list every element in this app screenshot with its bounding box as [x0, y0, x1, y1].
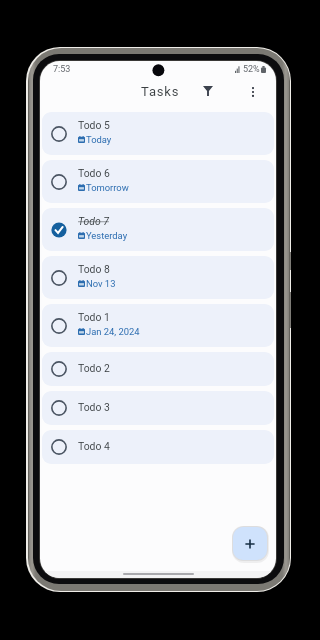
button[interactable]: Add task [233, 527, 267, 560]
staticText: Yesterday [86, 230, 128, 241]
staticText: Todo 1 [78, 311, 110, 323]
staticText: Todo 3 [78, 401, 110, 413]
staticText: Today [86, 134, 112, 145]
staticText: Tasks [141, 84, 180, 99]
staticText: Tomorrow [86, 182, 129, 193]
button[interactable]: Filter [197, 80, 219, 102]
staticText: Todo 2 [78, 362, 110, 374]
button[interactable]: More options [242, 81, 264, 103]
staticText: 52% [243, 64, 260, 75]
staticText: Todo 6 [78, 167, 110, 179]
staticText: Todo 4 [78, 440, 110, 452]
staticText: 7:53 [53, 64, 71, 75]
staticText: Todo 8 [78, 263, 110, 275]
staticText: Jan 24, 2024 [86, 326, 140, 337]
staticText: Nov 13 [86, 278, 116, 289]
staticText: Todo 5 [78, 119, 110, 131]
button[interactable]: Todo 2 [42, 352, 274, 386]
button[interactable]: Todo 8 [42, 256, 274, 299]
button[interactable]: Todo 1 [42, 304, 274, 347]
button[interactable]: Todo 6 [42, 160, 274, 203]
button[interactable]: Todo 7 [42, 208, 274, 251]
button[interactable]: Todo 5 [42, 112, 274, 155]
button[interactable]: Todo 4 [42, 430, 274, 464]
staticText: Todo 7 [78, 215, 109, 227]
button[interactable]: Todo 3 [42, 391, 274, 425]
